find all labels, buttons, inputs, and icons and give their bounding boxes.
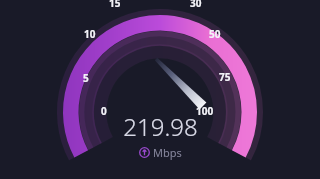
staticText: 10 [84,27,96,41]
staticText: 0 [101,104,107,118]
staticText: Mbps [153,145,182,160]
staticText: 219.98 [123,110,198,143]
staticText: 5 [83,71,89,85]
staticText: 30 [190,0,202,10]
staticText: 15 [109,0,121,10]
button[interactable]: 219.98 [110,110,210,160]
staticText: 100 [196,104,214,118]
staticText: 50 [209,27,221,41]
staticText: 75 [219,70,231,84]
other: Upload speed [139,147,150,158]
